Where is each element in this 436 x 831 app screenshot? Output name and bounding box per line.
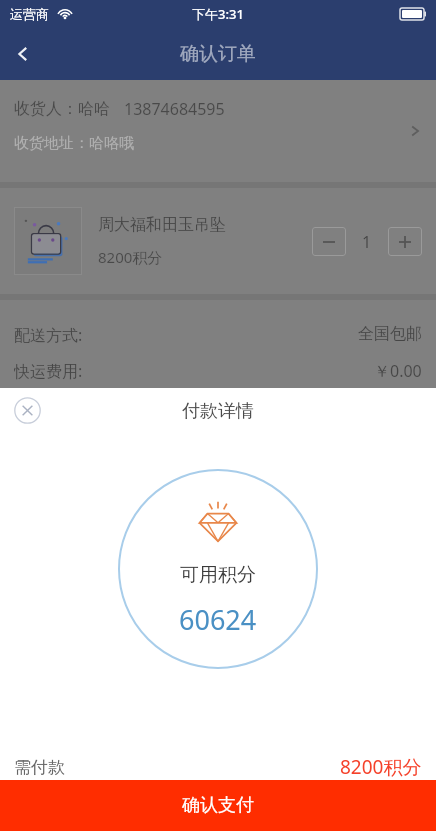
staticText: 收货人：哈哈 (14, 99, 110, 119)
staticText: 运营商 (10, 6, 49, 22)
staticText: 付款详情 (182, 400, 254, 423)
staticText: 1 (362, 231, 372, 253)
staticText: 周大福和田玉吊坠 (98, 215, 226, 235)
staticText: 可用积分 (180, 563, 256, 587)
staticText: 需付款 (14, 757, 65, 778)
button[interactable]: 增加数量 (388, 227, 422, 256)
staticText: 60624 (179, 601, 257, 638)
staticText: 确认订单 (180, 42, 256, 66)
staticText: 确认支付 (182, 794, 254, 817)
staticText: 配送方式: (14, 324, 83, 346)
staticText: 13874684595 (124, 98, 225, 120)
staticText: 8200积分 (98, 247, 163, 267)
staticText: 快运费用: (14, 360, 83, 380)
button[interactable]: 减少数量 (312, 227, 346, 256)
button[interactable]: 确认支付 (0, 780, 436, 831)
button[interactable]: 关闭 (9, 392, 45, 428)
staticText: ￥0.00 (374, 360, 422, 380)
button[interactable]: 返回 (0, 31, 46, 77)
staticText: 下午3:31 (192, 5, 244, 23)
staticText: 收货地址：哈咯哦 (14, 134, 134, 153)
button[interactable]: 收货人：哈哈 (0, 80, 436, 182)
staticText: 8200积分 (340, 754, 422, 780)
staticText: 全国包邮 (358, 324, 422, 344)
